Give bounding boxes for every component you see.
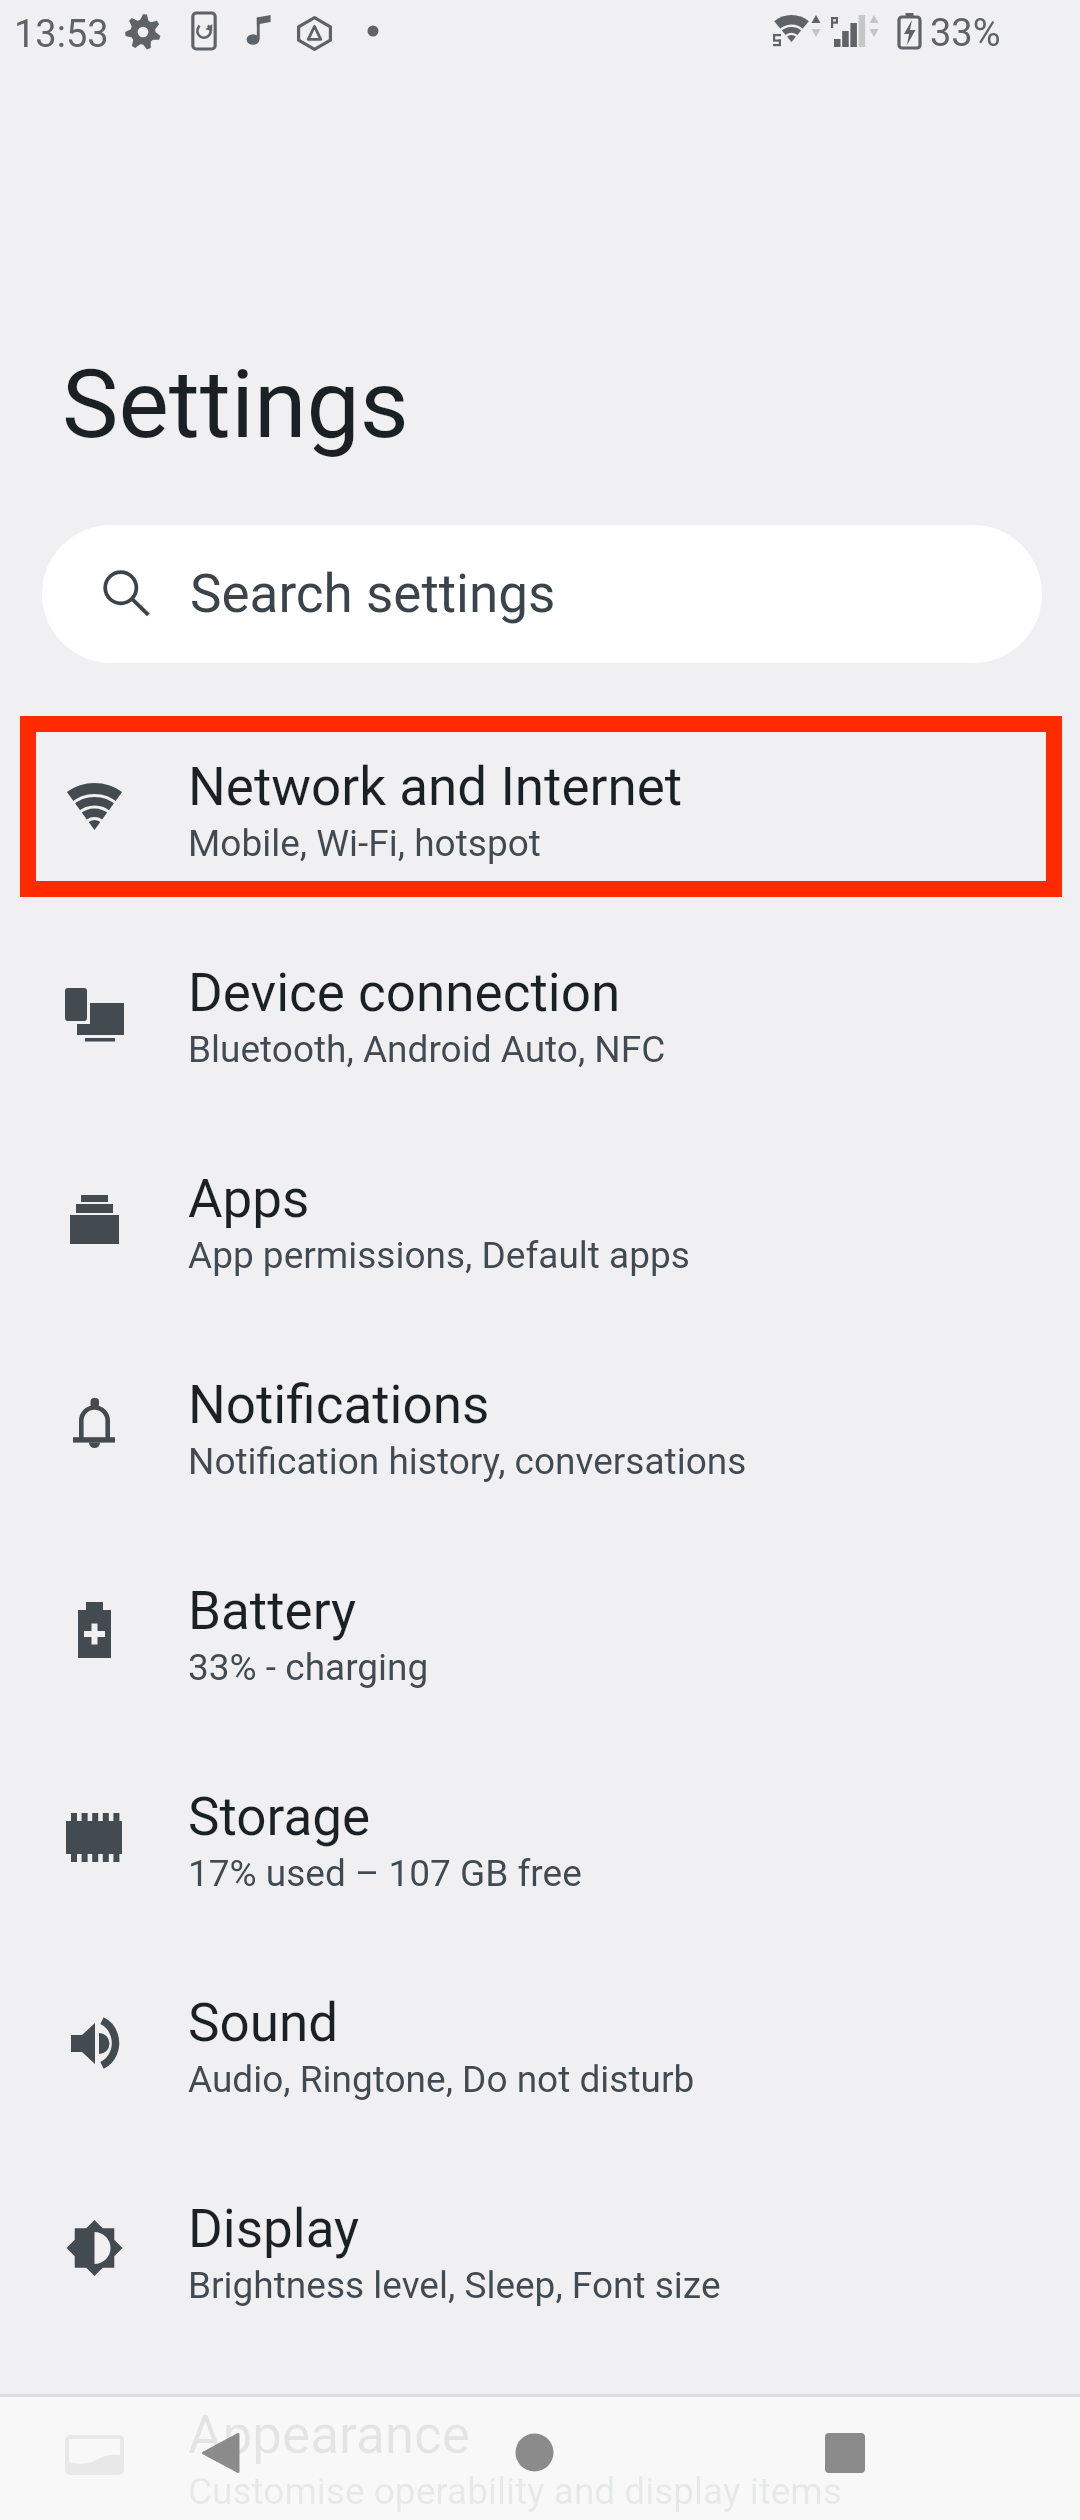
staticText: Appearance	[188, 2404, 470, 2466]
button[interactable]: Search settings	[42, 525, 1042, 663]
button[interactable]: Display	[0, 2158, 1080, 2364]
staticText: Notification history, conversations	[188, 1440, 747, 1483]
staticText: 13:53	[14, 12, 109, 57]
staticText: Network and Internet	[188, 756, 683, 818]
button[interactable]: Network and Internet	[0, 716, 1080, 922]
staticText: Settings	[62, 349, 409, 460]
staticText: Device connection	[188, 962, 621, 1024]
button[interactable]: Storage	[0, 1746, 1080, 1952]
button[interactable]: Home	[475, 2393, 595, 2513]
button[interactable]: Battery	[0, 1540, 1080, 1746]
staticText: 33%	[930, 11, 1001, 56]
button[interactable]: Back	[161, 2393, 281, 2513]
button[interactable]: Device connection	[0, 922, 1080, 1128]
staticText: Storage	[188, 1786, 371, 1848]
button[interactable]: Appearance	[0, 2364, 1080, 2520]
staticText: Battery	[188, 1580, 357, 1642]
staticText: Apps	[188, 1168, 310, 1230]
staticText: App permissions, Default apps	[188, 1234, 690, 1277]
button[interactable]: Notifications	[0, 1334, 1080, 1540]
staticText: Customise operability and display items	[188, 2470, 842, 2513]
staticText: Notifications	[188, 1374, 490, 1436]
staticText: Sound	[188, 1992, 339, 2054]
button[interactable]: Recents	[785, 2393, 905, 2513]
staticText: 33% - charging	[188, 1646, 429, 1689]
staticText: Brightness level, Sleep, Font size	[188, 2264, 721, 2307]
staticText: Search settings	[190, 563, 556, 625]
staticText: Mobile, Wi-Fi, hotspot	[188, 822, 541, 865]
button[interactable]: Apps	[0, 1128, 1080, 1334]
staticText: Bluetooth, Android Auto, NFC	[188, 1028, 666, 1071]
staticText: Display	[188, 2198, 360, 2260]
button[interactable]: Sound	[0, 1952, 1080, 2158]
staticText: Audio, Ringtone, Do not disturb	[188, 2058, 695, 2101]
staticText: 17% used – 107 GB free	[188, 1852, 582, 1895]
